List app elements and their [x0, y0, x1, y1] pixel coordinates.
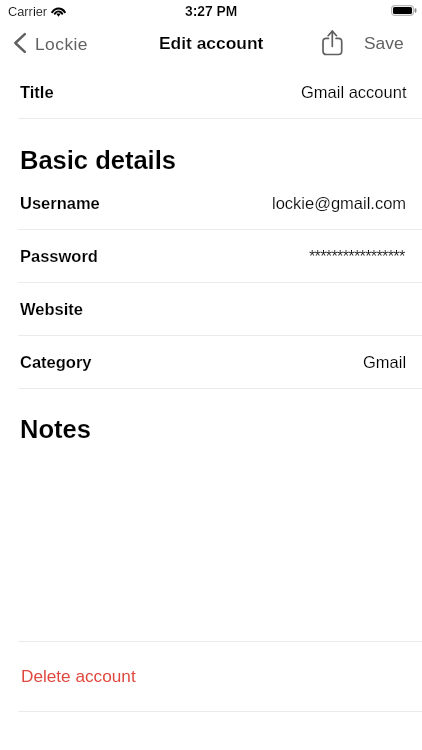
button[interactable]: Title	[0, 66, 422, 119]
button[interactable]: Username	[0, 187, 422, 230]
staticText: Lockie	[35, 34, 88, 53]
staticText: Save	[364, 33, 404, 52]
button[interactable]: Website	[0, 283, 422, 336]
staticText: Gmail account	[301, 83, 407, 101]
staticText: 3:27 PM	[185, 4, 238, 19]
staticText: Category	[20, 353, 92, 371]
staticText: Delete account	[21, 666, 136, 685]
staticText: Gmail	[363, 353, 407, 371]
staticText: Basic details	[20, 146, 176, 174]
staticText: Password	[20, 247, 98, 265]
staticText: *****************	[309, 247, 405, 265]
staticText: Title	[20, 83, 54, 101]
button[interactable]: Password	[0, 230, 422, 283]
staticText: Username	[20, 194, 100, 212]
button[interactable]: Share	[316, 27, 349, 65]
staticText: Website	[20, 300, 83, 318]
button[interactable]: Lockie	[0, 24, 98, 62]
staticText: Edit account	[159, 33, 264, 52]
button[interactable]: Save	[360, 24, 408, 62]
staticText: lockie@gmail.com	[272, 194, 407, 212]
button[interactable]: Delete account	[0, 642, 422, 711]
staticText: Carrier	[8, 4, 48, 18]
button[interactable]: Category	[0, 336, 422, 389]
staticText: Notes	[20, 415, 91, 443]
